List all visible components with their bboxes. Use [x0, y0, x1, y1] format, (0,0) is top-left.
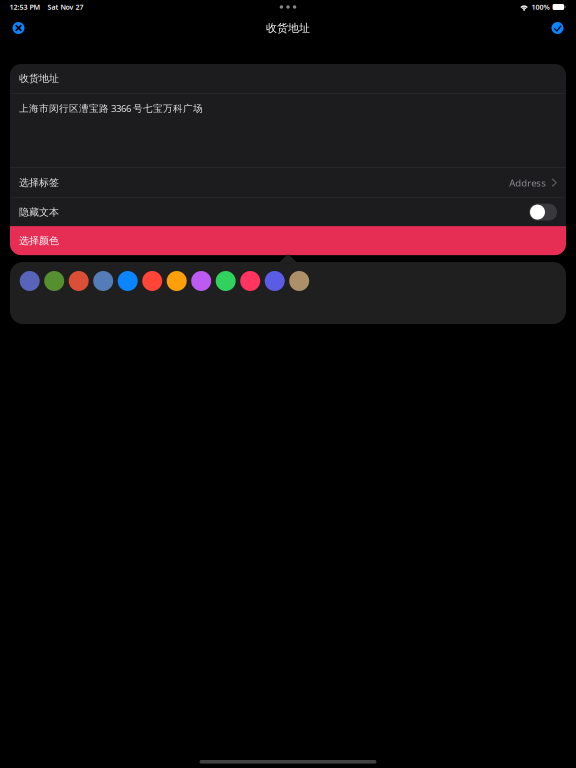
staticText: Address — [509, 176, 546, 189]
button[interactable]: Colour option — [69, 271, 89, 291]
button[interactable]: Colour option — [142, 271, 162, 291]
staticText: 选择标签 — [19, 176, 59, 189]
button[interactable]: 选择标签 — [10, 168, 566, 197]
button[interactable]: Colour option — [167, 271, 187, 291]
staticText: 100% — [532, 2, 550, 12]
button[interactable]: Colour option — [265, 271, 285, 291]
button[interactable]: Colour option — [44, 271, 64, 291]
button[interactable]: Colour option — [289, 271, 309, 291]
button[interactable]: Colour option — [20, 271, 40, 291]
staticText: 选择颜色 — [19, 234, 59, 247]
button[interactable]: Colour option — [216, 271, 236, 291]
button[interactable]: Save — [544, 15, 570, 41]
button[interactable]: Colour option — [240, 271, 260, 291]
staticText: 收货地址 — [266, 21, 310, 35]
staticText: Sat Nov 27 — [47, 2, 83, 12]
button[interactable]: 选择颜色 — [10, 226, 566, 255]
staticText: 上海市闵行区漕宝路 3366 号七宝万科广场 — [19, 102, 203, 115]
button[interactable]: Colour option — [118, 271, 138, 291]
button[interactable]: Colour option — [191, 271, 211, 291]
button[interactable]: Close — [5, 15, 31, 41]
staticText: 隐藏文本 — [19, 206, 59, 218]
button[interactable]: Colour option — [93, 271, 113, 291]
button[interactable]: 隐藏文本 — [529, 204, 557, 221]
staticText: 收货地址 — [19, 72, 59, 85]
staticText: 12:53 PM — [9, 2, 40, 12]
